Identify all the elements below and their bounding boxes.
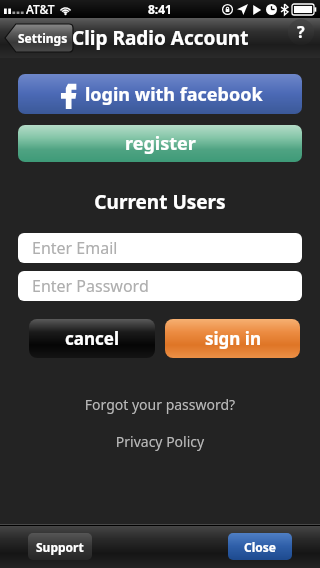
button[interactable]: Enter Password: [18, 271, 302, 301]
button[interactable]: cancel: [29, 319, 155, 358]
staticText: ?: [297, 21, 305, 43]
button[interactable]: Privacy Policy: [0, 432, 320, 451]
staticText: Current Users: [0, 189, 320, 215]
staticText: login with facebook: [85, 82, 263, 107]
staticText: 8:41: [148, 1, 172, 17]
staticText: Close: [244, 539, 276, 555]
button[interactable]: Help: [288, 19, 314, 45]
button[interactable]: Forgot your password?: [0, 395, 320, 414]
staticText: cancel: [65, 327, 119, 350]
staticText: sign in: [205, 327, 261, 350]
staticText: Enter Email: [32, 237, 118, 259]
button[interactable]: Close: [228, 533, 292, 560]
button[interactable]: Settings: [5, 24, 73, 52]
button[interactable]: Support: [28, 533, 92, 560]
staticText: Settings: [18, 30, 68, 46]
button[interactable]: Enter Email: [18, 233, 302, 263]
button[interactable]: login with facebook: [18, 74, 302, 114]
button[interactable]: register: [18, 125, 302, 162]
staticText: Forgot your password?: [0, 395, 320, 414]
staticText: Privacy Policy: [0, 432, 320, 451]
staticText: register: [125, 131, 196, 156]
staticText: Support: [36, 539, 84, 555]
staticText: AT&T: [26, 1, 55, 17]
staticText: Clip Radio Account: [72, 25, 249, 51]
staticText: Enter Password: [32, 275, 149, 297]
button[interactable]: sign in: [165, 319, 300, 358]
